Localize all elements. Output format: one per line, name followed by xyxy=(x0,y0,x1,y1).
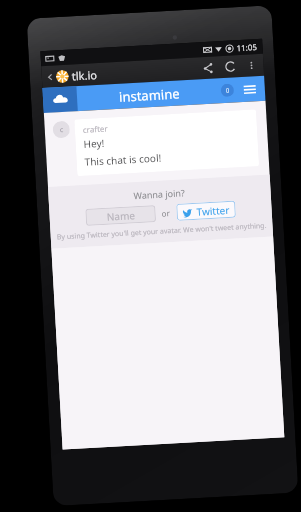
button[interactable]: More options xyxy=(244,58,259,73)
staticText: Wanna join? xyxy=(133,186,186,201)
button[interactable]: Menu xyxy=(241,81,258,98)
button[interactable]: c xyxy=(52,109,259,177)
button[interactable]: Name xyxy=(85,205,156,226)
staticText: instamine xyxy=(119,84,180,106)
staticText: c xyxy=(59,125,64,135)
button[interactable]: Share xyxy=(199,59,216,76)
button[interactable]: Back xyxy=(47,73,54,81)
staticText: crafter xyxy=(82,122,108,135)
staticText: 11:05 xyxy=(236,41,258,53)
staticText: tlk.io xyxy=(71,67,98,83)
button[interactable]: Reload xyxy=(222,58,239,75)
button[interactable]: Users online xyxy=(220,83,234,97)
staticText: 0 xyxy=(226,87,230,95)
button[interactable]: Home xyxy=(42,86,78,113)
staticText: Hey! xyxy=(83,136,105,151)
staticText: Name xyxy=(106,208,136,224)
button[interactable]: Twitter xyxy=(176,200,236,221)
staticText: Twitter xyxy=(196,203,230,219)
staticText: or xyxy=(161,207,171,219)
staticText: This chat is cool! xyxy=(84,151,162,169)
staticText: By using Twitter you'll get your avatar.… xyxy=(56,221,267,242)
